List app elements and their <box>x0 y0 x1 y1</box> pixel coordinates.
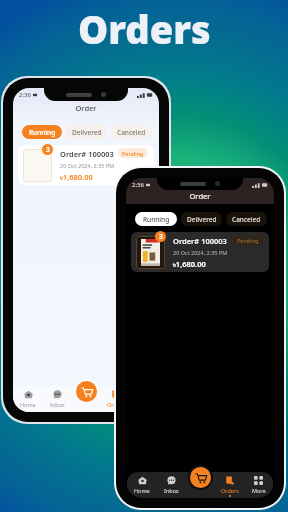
staticText: Inbox <box>164 487 179 494</box>
staticText: Delivered <box>72 128 102 137</box>
staticText: Home <box>134 487 150 494</box>
staticText: ৳1,680.00 <box>60 172 93 182</box>
button[interactable]: More <box>244 476 273 494</box>
staticText: Pending <box>122 150 144 157</box>
button[interactable]: Inbox <box>157 476 186 494</box>
button[interactable]: Home <box>127 476 157 494</box>
staticText: 2:36 <box>132 181 144 189</box>
button[interactable]: Canceled <box>226 212 267 226</box>
staticText: Canceled <box>232 215 261 224</box>
staticText: Inbox <box>50 401 65 408</box>
button[interactable]: Orders <box>215 476 244 497</box>
staticText: 20 Oct 2024, 2:35 PM <box>60 162 115 169</box>
button[interactable]: Cart <box>190 467 211 488</box>
staticText: 2:36 <box>19 91 31 99</box>
staticText: Canceled <box>117 128 146 137</box>
button[interactable]: Delivered <box>181 212 222 226</box>
button[interactable]: Order# 100003 <box>18 145 154 185</box>
staticText: More <box>252 487 266 494</box>
staticText: Order# 100003 <box>60 149 114 159</box>
button[interactable]: Order# 100003 <box>131 232 269 272</box>
button[interactable]: Orders <box>101 390 130 411</box>
staticText: Orders <box>78 3 211 55</box>
staticText: 3 <box>46 145 50 154</box>
staticText: Delivered <box>187 215 217 224</box>
staticText: Orders <box>221 487 239 494</box>
staticText: Order <box>126 191 274 201</box>
button[interactable]: Inbox <box>43 390 72 408</box>
staticText: Order# 100003 <box>173 236 227 246</box>
button[interactable]: Delivered <box>66 125 107 139</box>
button[interactable]: Home <box>13 390 43 408</box>
staticText: Running <box>143 215 170 224</box>
staticText: 3 <box>159 232 163 241</box>
staticText: Orders <box>107 401 125 408</box>
staticText: Pending <box>237 237 259 244</box>
staticText: 20 Oct 2024, 2:35 PM <box>173 249 228 256</box>
button[interactable]: Cart <box>76 381 97 402</box>
staticText: Order <box>13 103 159 113</box>
staticText: ৳1,680.00 <box>173 259 206 269</box>
button[interactable]: Canceled <box>111 125 152 139</box>
staticText: Running <box>29 128 56 137</box>
button[interactable]: Running <box>22 125 62 139</box>
button[interactable]: Running <box>135 212 177 226</box>
staticText: Home <box>20 401 36 408</box>
